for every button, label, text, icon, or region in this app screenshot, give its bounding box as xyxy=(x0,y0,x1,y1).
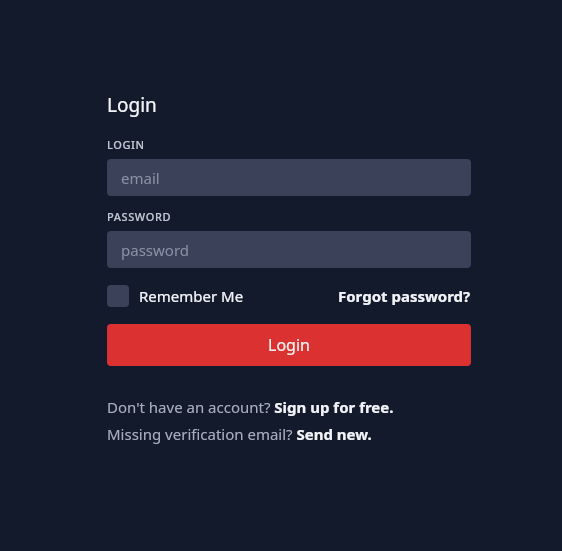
button[interactable]: Forgot password? xyxy=(338,286,471,306)
button[interactable]: Remember Me xyxy=(107,285,244,307)
button[interactable]: Missing verification email? Send new. xyxy=(107,424,372,444)
button[interactable]: password xyxy=(107,231,471,268)
staticText: email xyxy=(121,168,160,188)
button[interactable]: Don't have an account? Sign up for free. xyxy=(107,397,394,417)
staticText: Remember Me xyxy=(139,286,244,306)
button[interactable]: email xyxy=(107,159,471,196)
staticText: PASSWORD xyxy=(107,209,172,224)
staticText: password xyxy=(121,240,189,260)
button[interactable]: Login xyxy=(107,324,471,366)
staticText: Login xyxy=(107,92,157,118)
staticText: LOGIN xyxy=(107,137,145,152)
staticText: Login xyxy=(268,334,310,356)
